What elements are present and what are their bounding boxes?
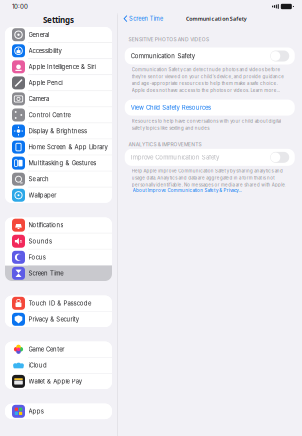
button[interactable]: Home Screen & App Library bbox=[5, 139, 112, 155]
staticText: Privacy & Security bbox=[28, 316, 79, 323]
button[interactable]: Game Center bbox=[5, 341, 112, 357]
staticText: Touch ID & Passcode bbox=[28, 300, 91, 307]
staticText: SENSITIVE PHOTOS AND VIDEOS bbox=[128, 36, 209, 42]
button[interactable]: iCloud bbox=[5, 358, 112, 373]
button[interactable]: Apple Intelligence & Siri bbox=[5, 59, 112, 74]
staticText: Resources to help have conversations wit… bbox=[132, 119, 281, 131]
button[interactable]: General bbox=[5, 27, 112, 42]
button[interactable]: Toggle bbox=[270, 50, 289, 61]
button[interactable]: Focus bbox=[5, 249, 112, 265]
staticText: ANALYTICS & IMPROVEMENTS bbox=[128, 141, 201, 147]
button[interactable]: Apple Pencil bbox=[5, 75, 112, 91]
staticText: Screen Time bbox=[28, 270, 63, 277]
button[interactable]: Display & Brightness bbox=[5, 123, 112, 139]
staticText: Apps bbox=[28, 408, 44, 415]
button[interactable]: About Improve Communication Safety & Pri… bbox=[122, 187, 298, 193]
staticText: Sounds bbox=[28, 238, 52, 245]
staticText: Accessibility bbox=[28, 47, 61, 54]
button[interactable]: Wallet & Apple Pay bbox=[5, 374, 112, 389]
staticText: Wallpaper bbox=[28, 192, 56, 199]
staticText: Game Center bbox=[28, 346, 64, 353]
staticText: Search bbox=[28, 176, 49, 183]
button[interactable]: Touch ID & Passcode bbox=[5, 295, 112, 311]
staticText: General bbox=[28, 31, 49, 38]
staticText: Focus bbox=[28, 254, 46, 261]
staticText: 10:00 bbox=[12, 3, 28, 10]
button[interactable]: Toggle bbox=[270, 152, 289, 163]
button[interactable]: Control Centre bbox=[5, 107, 112, 123]
staticText: Help Apple improve Communication Safety … bbox=[132, 168, 286, 187]
button[interactable]: Camera bbox=[5, 91, 112, 107]
staticText: Home Screen & App Library bbox=[28, 143, 107, 151]
button[interactable]: Search bbox=[5, 171, 112, 187]
staticText: Notifications bbox=[28, 222, 63, 229]
staticText: Improve Communication Safety bbox=[131, 154, 219, 161]
staticText: Communication Safety can detect nude pho… bbox=[132, 67, 284, 93]
staticText: Apple Intelligence & Siri bbox=[28, 63, 95, 70]
staticText: Apple Pencil bbox=[28, 79, 63, 86]
button[interactable]: Accessibility bbox=[5, 43, 112, 58]
button[interactable]: Notifications bbox=[5, 217, 112, 233]
staticText: Multitasking & Gestures bbox=[28, 159, 96, 167]
staticText: View Child Safety Resources bbox=[131, 104, 211, 111]
button[interactable]: Wallpaper bbox=[5, 187, 112, 203]
button[interactable]: Apps bbox=[5, 404, 112, 419]
staticText: Wallet & Apple Pay bbox=[28, 378, 82, 385]
staticText: Communication Safety bbox=[131, 52, 195, 60]
button[interactable]: Sounds bbox=[5, 233, 112, 249]
staticText: About Improve Communication Safety & Pri… bbox=[133, 188, 242, 193]
button[interactable]: View Child Safety Resources bbox=[125, 100, 295, 116]
staticText: Display & Brightness bbox=[28, 127, 87, 135]
staticText: Screen Time bbox=[129, 15, 163, 22]
staticText: Camera bbox=[28, 95, 49, 102]
button[interactable]: Privacy & Security bbox=[5, 312, 112, 327]
button[interactable]: Screen Time bbox=[5, 266, 112, 281]
button[interactable]: Multitasking & Gestures bbox=[5, 155, 112, 171]
staticText: Settings bbox=[43, 15, 74, 25]
staticText: iCloud bbox=[28, 362, 47, 369]
staticText: Communication Safety bbox=[186, 15, 247, 22]
staticText: Control Centre bbox=[28, 111, 70, 119]
button[interactable]: Screen Time bbox=[117, 15, 163, 23]
